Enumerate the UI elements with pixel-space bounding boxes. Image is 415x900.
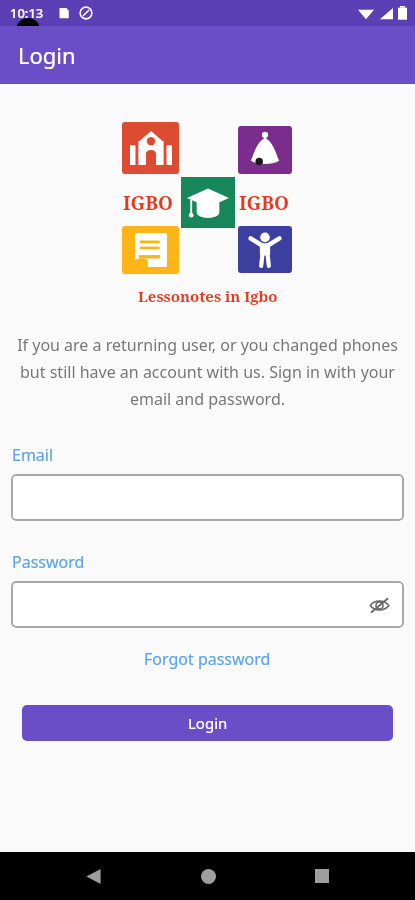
button[interactable]: Back (72, 855, 114, 897)
button[interactable]: Show password (364, 590, 394, 620)
staticText: Login (18, 40, 76, 70)
button[interactable]: Login (22, 705, 393, 741)
staticText: IGBO (123, 190, 173, 216)
staticText: Forgot password (144, 648, 271, 670)
button[interactable] (11, 474, 404, 521)
staticText: IGBO (239, 190, 289, 216)
button[interactable]: Show password (11, 581, 404, 628)
button[interactable]: Recent apps (301, 855, 343, 897)
staticText: 10:13 (10, 4, 44, 22)
staticText: Lessonotes in Igbo (138, 286, 278, 306)
staticText: Password (12, 551, 85, 573)
button[interactable]: Forgot password (136, 644, 279, 674)
staticText: Login (188, 713, 228, 733)
staticText: Email (12, 444, 54, 466)
button[interactable]: Home (187, 855, 229, 897)
staticText: If you are a returning user, or you chan… (12, 334, 403, 410)
